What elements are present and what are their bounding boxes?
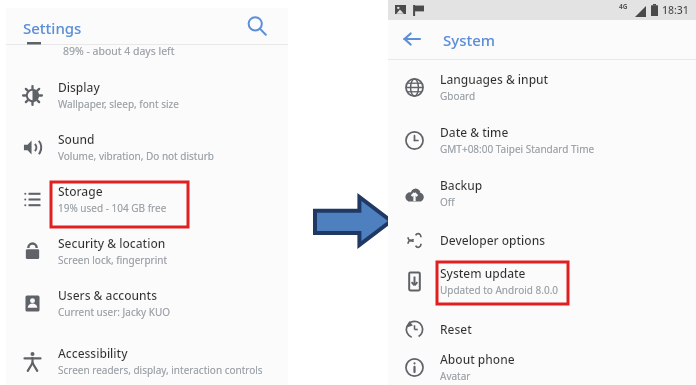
staticText: Updated to Android 8.0.0 [440,283,559,297]
button[interactable]: Developer options [388,218,696,262]
staticText: Sound [58,131,95,147]
staticText: Screen readers, display, interaction con… [58,363,263,377]
staticText: Current user: Jacky KUO [58,305,171,319]
staticText: Accessibility [58,345,128,361]
button[interactable]: Security & location [6,229,288,273]
staticText: Settings [23,18,82,38]
staticText: 18:31 [662,3,689,17]
staticText: GMT+08:00 Taipei Standard Time [440,142,595,156]
staticText: Storage [58,183,103,199]
button[interactable]: About phone [388,345,696,385]
button[interactable]: Languages & input [388,65,696,109]
button[interactable]: Reset [388,307,696,351]
staticText: 19% used - 104 GB free [58,201,167,215]
staticText: Off [440,195,455,209]
staticText: Backup [440,177,483,193]
staticText: Avatar [440,369,471,383]
staticText: Reset [440,321,472,337]
staticText: Screen lock, fingerprint [58,253,168,267]
staticText: Volume, vibration, Do not disturb [58,149,214,163]
button[interactable]: Date & time [388,118,696,162]
staticText: 4G [619,2,628,11]
button[interactable]: Storage [6,177,288,221]
staticText: System update [440,265,526,281]
staticText: Gboard [440,89,476,103]
staticText: System [443,30,496,50]
button[interactable]: Sound [6,125,288,169]
staticText: Security & location [58,235,166,251]
button[interactable]: Accessibility [6,339,288,383]
staticText: 89% - about 4 days left [63,44,175,58]
button[interactable]: Users & accounts [6,281,288,325]
button[interactable]: Back [401,28,423,50]
button[interactable]: Backup [388,171,696,215]
staticText: Display [58,79,100,95]
staticText: Languages & input [440,71,549,87]
button[interactable]: Search [246,15,268,37]
staticText: Users & accounts [58,287,158,303]
button[interactable]: Display [6,73,288,117]
staticText: About phone [440,351,515,367]
staticText: Developer options [440,232,546,248]
button[interactable]: System update [388,259,696,303]
staticText: Wallpaper, sleep, font size [58,97,179,111]
staticText: Date & time [440,124,509,140]
